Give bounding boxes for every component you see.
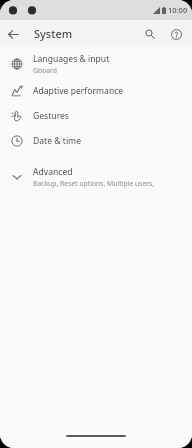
button[interactable]: Search: [138, 22, 162, 46]
button[interactable]: Gestures: [0, 103, 192, 128]
staticText: Backup, Reset options, Multiple users, D…: [33, 179, 188, 188]
staticText: Advanced: [33, 166, 73, 178]
button[interactable]: Adaptive performance: [0, 78, 192, 103]
button[interactable]: Languages & input: [0, 50, 192, 78]
button[interactable]: Date & time: [0, 128, 192, 153]
staticText: Date & time: [33, 135, 82, 147]
staticText: 10:00: [168, 5, 188, 15]
staticText: Gboard: [33, 66, 57, 75]
staticText: Adaptive performance: [33, 85, 124, 97]
button[interactable]: Help: [164, 22, 188, 46]
staticText: Gestures: [33, 110, 69, 122]
button[interactable]: Back: [0, 21, 26, 47]
staticText: Languages & input: [33, 53, 110, 65]
button[interactable]: Advanced: [0, 163, 192, 191]
staticText: System: [34, 26, 73, 41]
